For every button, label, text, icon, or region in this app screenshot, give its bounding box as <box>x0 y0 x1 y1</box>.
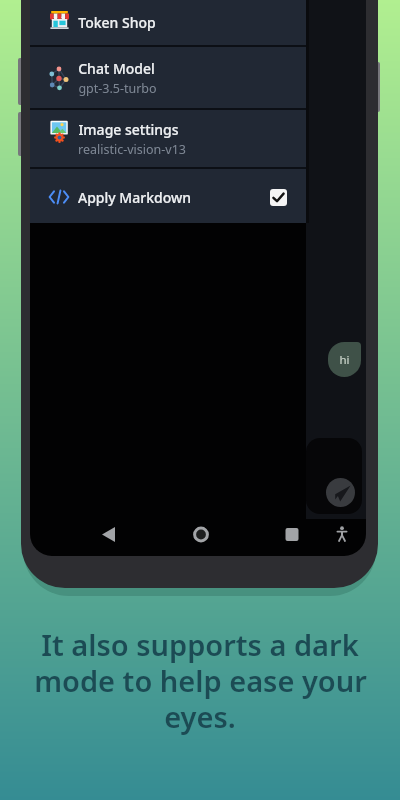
staticText: realistic-vision-v13 <box>78 141 186 158</box>
staticText: Chat Model <box>78 59 155 78</box>
staticText: gpt-3.5-turbo <box>78 80 157 97</box>
button[interactable] <box>191 526 211 544</box>
button[interactable] <box>332 524 352 544</box>
staticText: Token Shop <box>78 13 156 32</box>
button[interactable] <box>282 526 302 544</box>
staticText: It also supports a dark <box>41 625 359 664</box>
staticText: Apply Markdown <box>78 188 191 207</box>
staticText: hi <box>339 352 350 368</box>
staticText: eyes. <box>164 697 236 736</box>
button[interactable]: Image settings <box>30 109 306 167</box>
button[interactable]: Token Shop <box>30 0 306 45</box>
button[interactable] <box>100 526 120 544</box>
staticText: Image settings <box>78 120 179 139</box>
button[interactable]: Chat Model <box>30 46 306 108</box>
button[interactable] <box>270 189 287 206</box>
button[interactable]: Apply Markdown <box>30 169 306 223</box>
staticText: mode to help ease your <box>34 661 367 700</box>
button[interactable] <box>326 478 355 507</box>
